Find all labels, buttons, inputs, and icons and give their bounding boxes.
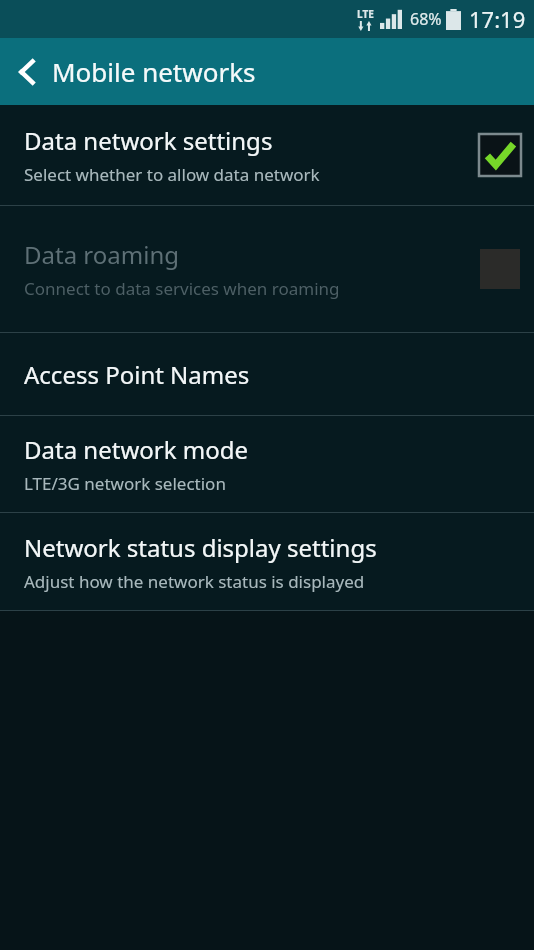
staticText: Select whether to allow data network [24, 163, 320, 186]
button[interactable]: Data network mode [0, 416, 534, 512]
staticText: Mobile networks [52, 54, 256, 89]
staticText: LTE/3G network selection [24, 472, 226, 495]
button[interactable]: Data network settings [0, 105, 534, 205]
staticText: LTE [357, 7, 374, 21]
staticText: 17:19 [469, 4, 526, 34]
staticText: Data roaming [24, 238, 179, 271]
staticText: 68% [410, 8, 442, 30]
button[interactable]: Data roaming checkbox, unchecked [476, 245, 524, 293]
staticText: Access Point Names [24, 358, 250, 391]
button[interactable]: Back [6, 51, 48, 93]
staticText: Data network settings [24, 124, 273, 157]
staticText: Network status display settings [24, 531, 377, 564]
staticText: Data network mode [24, 433, 248, 466]
button[interactable]: Access Point Names [0, 333, 534, 415]
button[interactable]: Data network settings checkbox, checked [476, 131, 524, 179]
button[interactable]: Network status display settings [0, 513, 534, 610]
staticText: Adjust how the network status is display… [24, 570, 365, 593]
staticText: Connect to data services when roaming [24, 277, 340, 300]
button[interactable]: Data roaming [0, 206, 534, 332]
